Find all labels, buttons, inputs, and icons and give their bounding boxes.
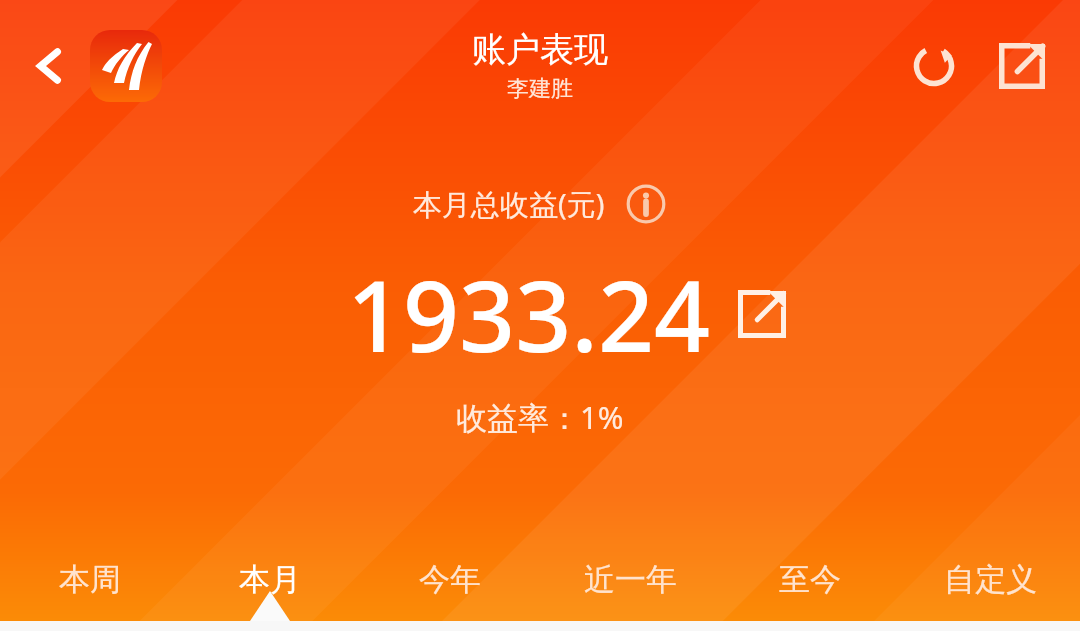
button[interactable]: Refresh xyxy=(896,28,972,104)
button[interactable]: 本周 xyxy=(0,531,180,621)
button[interactable]: 今年 xyxy=(360,531,540,621)
staticText: 近一年 xyxy=(584,560,677,599)
button[interactable]: Share xyxy=(984,28,1060,104)
button[interactable]: 本月 xyxy=(180,531,360,621)
staticText: 自定义 xyxy=(944,560,1037,599)
button[interactable]: App logo xyxy=(90,30,162,102)
staticText: 至今 xyxy=(779,560,841,599)
staticText: 1933.24 xyxy=(347,247,710,380)
staticText: 收益率：1% xyxy=(456,396,624,438)
button[interactable]: 本月总收益(元) xyxy=(413,183,667,225)
button[interactable]: 近一年 xyxy=(540,531,720,621)
button[interactable]: 至今 xyxy=(720,531,900,621)
button[interactable]: Back xyxy=(14,30,86,102)
staticText: 今年 xyxy=(419,560,481,599)
staticText: 李建胜 xyxy=(507,75,573,103)
button[interactable]: 自定义 xyxy=(900,531,1080,621)
staticText: 本月 xyxy=(239,560,301,599)
staticText: 本月总收益(元) xyxy=(413,184,605,224)
staticText: 账户表现 xyxy=(472,28,608,71)
button[interactable]: Open details xyxy=(734,286,790,342)
staticText: 本周 xyxy=(59,560,121,599)
